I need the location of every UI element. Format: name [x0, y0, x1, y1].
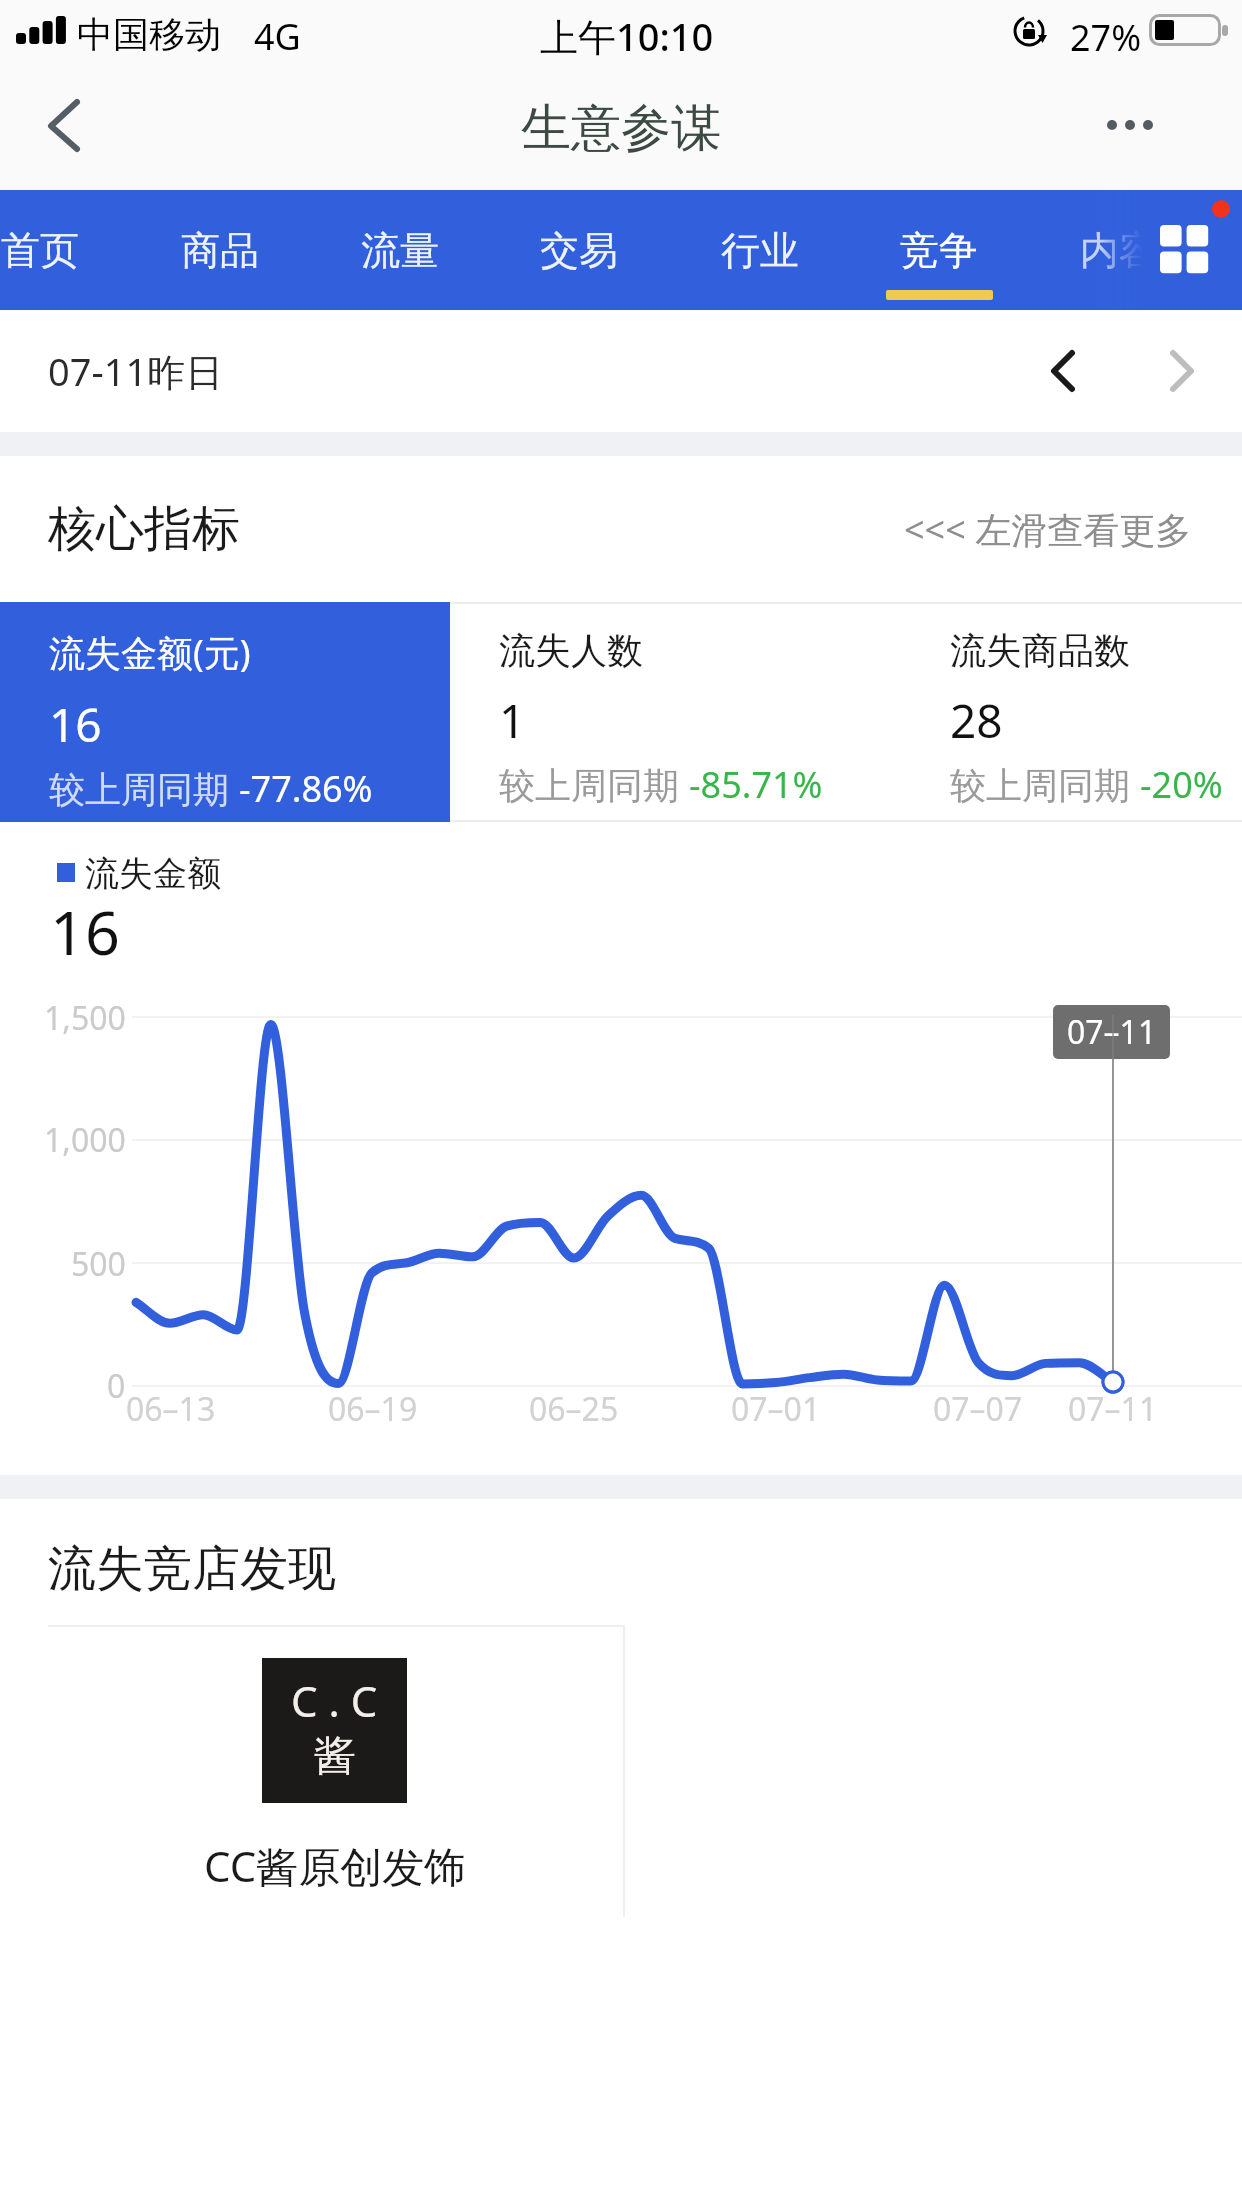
staticText: 较上周同期: [49, 764, 239, 813]
staticText: 4G: [254, 12, 301, 61]
staticText: 07–01: [731, 1387, 821, 1431]
staticText: 06–13: [126, 1387, 216, 1431]
staticText: CC酱原创发饰: [204, 1837, 467, 1894]
staticText: 1: [499, 689, 526, 752]
staticText: 07-11昨日: [48, 345, 224, 397]
staticText: 商品: [181, 226, 259, 275]
staticText: 500: [71, 1242, 126, 1286]
staticText: 流失商品数: [950, 628, 1130, 673]
staticText: 1,500: [44, 996, 126, 1040]
button[interactable]: 交易: [504, 190, 654, 310]
button[interactable]: 流失商品数: [901, 602, 1242, 822]
button[interactable]: 首页: [0, 190, 115, 310]
staticText: C . C: [291, 1672, 378, 1729]
staticText: 生意参谋: [521, 97, 721, 160]
button[interactable]: All modules: [1130, 190, 1242, 310]
staticText: 中国移动: [77, 12, 221, 57]
button[interactable]: 竞争: [864, 190, 1014, 310]
staticText: 27%: [1070, 13, 1142, 62]
button[interactable]: 流失人数: [450, 602, 901, 822]
staticText: 流失金额: [85, 852, 221, 895]
button[interactable]: Previous day: [1014, 326, 1106, 418]
staticText: 上午10:10: [540, 10, 714, 62]
staticText: 07–11: [1067, 1010, 1157, 1054]
staticText: 28: [950, 689, 1003, 752]
staticText: 流失竞店发现: [48, 1539, 336, 1599]
button[interactable]: 商品: [145, 190, 295, 310]
staticText: 较上周同期: [499, 760, 689, 809]
staticText: -77.86%: [239, 764, 373, 813]
staticText: -85.71%: [689, 760, 823, 809]
staticText: 16: [50, 890, 120, 973]
staticText: 流量: [361, 226, 439, 275]
staticText: 07–07: [933, 1387, 1023, 1431]
staticText: 首页: [1, 226, 79, 275]
button[interactable]: 流量: [325, 190, 475, 310]
staticText: 竞争: [900, 226, 978, 275]
staticText: 07–11: [1068, 1387, 1158, 1431]
staticText: 行业: [721, 226, 799, 275]
staticText: <<< 左滑查看更多: [904, 505, 1192, 554]
button[interactable]: More options: [1080, 75, 1180, 175]
staticText: 06–25: [529, 1387, 619, 1431]
staticText: 06–19: [328, 1387, 418, 1431]
staticText: 交易: [540, 226, 618, 275]
button[interactable]: Next day: [1134, 326, 1226, 418]
staticText: 较上周同期: [950, 760, 1140, 809]
staticText: 1,000: [44, 1118, 126, 1162]
staticText: -20%: [1140, 760, 1223, 809]
staticText: 0: [107, 1364, 126, 1408]
button[interactable]: 内容: [1044, 190, 1194, 310]
button[interactable]: 流失金额(元): [0, 602, 450, 822]
button[interactable]: Back: [12, 78, 112, 178]
staticText: 16: [49, 693, 102, 756]
button[interactable]: 行业: [685, 190, 835, 310]
staticText: 内容: [1080, 226, 1158, 275]
staticText: 流失金额(元): [49, 628, 251, 677]
staticText: 酱: [314, 1730, 356, 1783]
button[interactable]: C . C: [48, 1627, 623, 1919]
staticText: 核心指标: [48, 499, 240, 559]
staticText: 流失人数: [499, 628, 643, 673]
